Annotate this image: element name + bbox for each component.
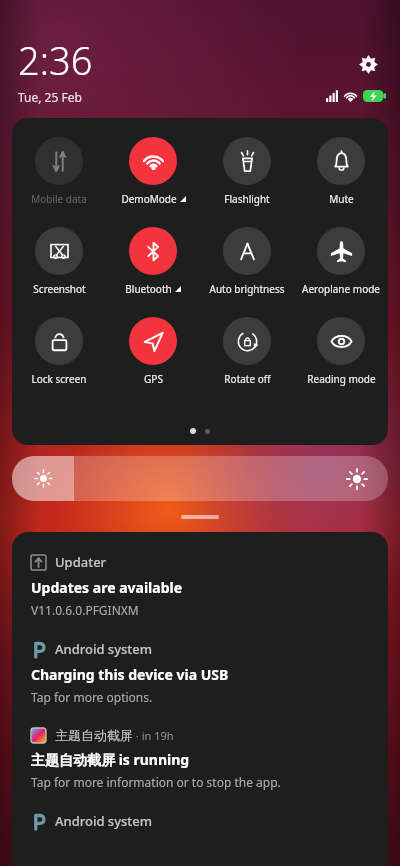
staticText: Lock screen bbox=[31, 372, 87, 386]
staticText: 2:36 bbox=[18, 34, 93, 86]
button[interactable]: DemoMode bbox=[106, 137, 200, 206]
staticText: Charging this device via USB bbox=[31, 665, 229, 684]
button[interactable]: Aeroplane mode bbox=[294, 227, 388, 296]
button[interactable]: Updater bbox=[31, 553, 372, 618]
staticText: · in 19h bbox=[133, 728, 174, 743]
button[interactable]: Flashlight bbox=[200, 137, 294, 206]
staticText: GPS bbox=[144, 372, 163, 386]
staticText: Reading mode bbox=[307, 372, 376, 386]
staticText: Mobile data bbox=[31, 192, 87, 206]
staticText: Bluetooth bbox=[125, 282, 172, 296]
staticText: Flashlight bbox=[224, 192, 270, 206]
button[interactable]: Settings bbox=[352, 48, 384, 80]
staticText: Mute bbox=[329, 192, 354, 206]
staticText: Updates are available bbox=[31, 578, 183, 597]
staticText: Android system bbox=[55, 812, 153, 830]
button[interactable]: Rotate off bbox=[200, 317, 294, 386]
staticText: Updater bbox=[55, 553, 107, 571]
staticText: Tap for more options. bbox=[31, 689, 153, 705]
button[interactable]: Screenshot bbox=[12, 227, 106, 296]
staticText: Auto brightness bbox=[209, 282, 285, 296]
staticText: 主题自动截屏 bbox=[55, 727, 133, 743]
staticText: DemoMode bbox=[121, 192, 177, 206]
button[interactable]: Bluetooth bbox=[106, 227, 200, 296]
staticText: Android system bbox=[55, 640, 153, 658]
button[interactable]: Auto brightness bbox=[200, 227, 294, 296]
button[interactable]: Android system bbox=[31, 640, 372, 705]
staticText: 主题自动截屏 is running bbox=[31, 750, 190, 769]
staticText: Screenshot bbox=[33, 282, 86, 296]
staticText: Tue, 25 Feb bbox=[18, 89, 82, 105]
button[interactable]: GPS bbox=[106, 317, 200, 386]
staticText: V11.0.6.0.PFGINXM bbox=[31, 602, 139, 618]
button[interactable]: Mobile data bbox=[12, 137, 106, 206]
button[interactable]: 主题自动截屏 bbox=[31, 727, 372, 790]
button[interactable]: Android system bbox=[31, 812, 372, 830]
button[interactable]: Lock screen bbox=[12, 317, 106, 386]
staticText: Rotate off bbox=[224, 372, 271, 386]
staticText: Tap for more information or to stop the … bbox=[31, 774, 281, 790]
button[interactable]: Mute bbox=[294, 137, 388, 206]
staticText: Aeroplane mode bbox=[302, 282, 380, 296]
button[interactable]: Reading mode bbox=[294, 317, 388, 386]
button[interactable]: Brightness bbox=[12, 456, 388, 501]
